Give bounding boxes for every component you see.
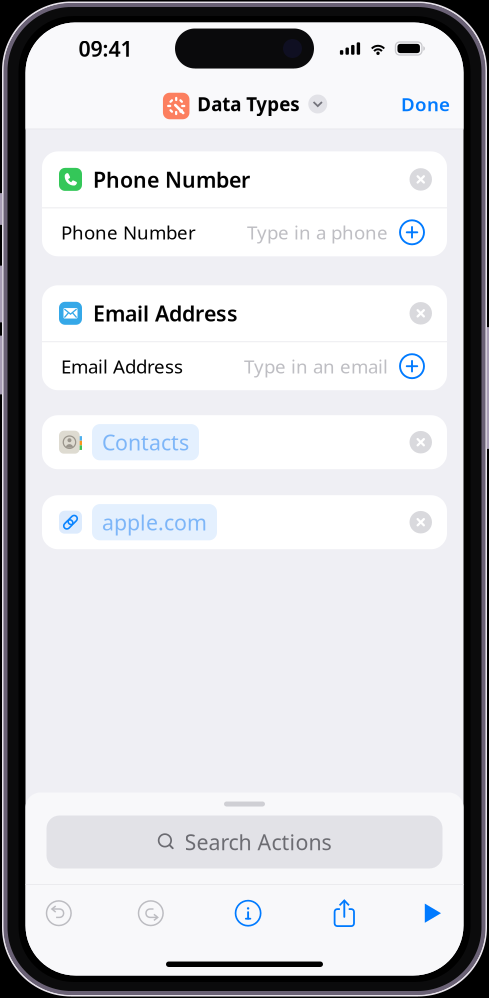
button[interactable]: Shortcut details	[231, 896, 265, 930]
staticText: apple.com	[102, 508, 207, 536]
button[interactable]: Remove	[409, 168, 432, 191]
staticText: 09:41	[78, 34, 132, 63]
button[interactable]: Share	[327, 896, 361, 930]
staticText: Search Actions	[184, 828, 331, 856]
button[interactable]: Undo	[42, 896, 76, 930]
button[interactable]: Add	[400, 354, 424, 378]
button[interactable]: Remove	[409, 302, 432, 324]
button[interactable]: Done	[393, 84, 457, 124]
staticText: Data Types	[197, 92, 299, 116]
button[interactable]: Redo	[134, 896, 168, 930]
staticText: Contacts	[102, 428, 189, 456]
staticText: Type in an email	[244, 354, 388, 379]
staticText: Done	[401, 92, 450, 116]
button[interactable]: Run shortcut	[416, 896, 450, 930]
button[interactable]: Shortcut options	[308, 94, 327, 113]
staticText: Type in a phone	[247, 220, 388, 245]
staticText: Phone Number	[61, 220, 196, 245]
button[interactable]: Search Actions	[46, 815, 442, 868]
button[interactable]: Remove	[409, 431, 432, 453]
staticText: Phone Number	[93, 165, 250, 193]
button[interactable]: Add	[400, 220, 424, 244]
button[interactable]: Remove	[409, 511, 432, 533]
staticText: Email Address	[61, 354, 183, 379]
staticText: Email Address	[93, 299, 238, 327]
